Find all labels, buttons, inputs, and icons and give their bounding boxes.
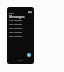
button[interactable]: Compose bbox=[27, 53, 31, 57]
staticText: Messages bbox=[9, 15, 25, 19]
button[interactable]: Alex Morgan bbox=[7, 35, 34, 39]
staticText: Alex Morgan bbox=[9, 27, 23, 30]
staticText: Alex Morgan bbox=[9, 19, 23, 22]
staticText: 9:41 bbox=[9, 11, 14, 14]
button[interactable]: Alex Morgan bbox=[7, 27, 34, 31]
staticText: ▮▮▮ bbox=[28, 11, 32, 14]
staticText: Alex Morgan bbox=[9, 35, 23, 38]
staticText: Alex Morgan bbox=[9, 23, 23, 26]
staticText: Alex Morgan bbox=[9, 31, 23, 34]
button[interactable]: Alex Morgan bbox=[7, 31, 34, 35]
button[interactable]: Alex Morgan bbox=[7, 19, 34, 23]
button[interactable]: Alex Morgan bbox=[7, 23, 34, 27]
